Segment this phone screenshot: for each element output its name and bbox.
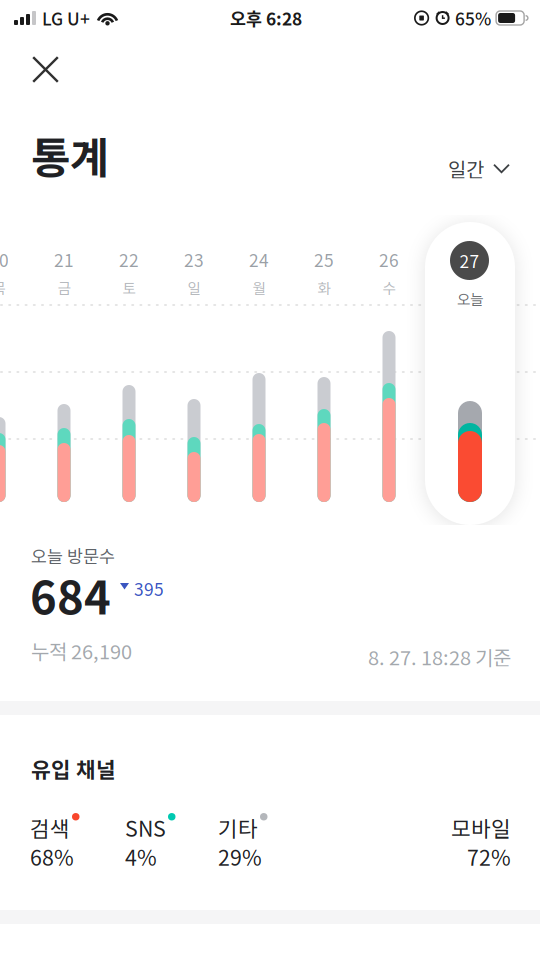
staticText: 모바일	[451, 812, 511, 843]
staticText: 395	[134, 576, 164, 601]
staticText: 26	[379, 247, 399, 272]
staticText: 8. 27. 18:28 기준	[368, 642, 511, 671]
staticText: 20	[0, 247, 9, 272]
staticText: 일간	[448, 154, 484, 183]
staticText: 오후 6:28	[230, 5, 302, 31]
button[interactable]: 일간	[440, 144, 518, 193]
staticText: 검색	[30, 812, 70, 843]
staticText: 화	[317, 277, 330, 298]
staticText: 수	[382, 277, 395, 298]
staticText: 일	[187, 277, 200, 298]
staticText: 토	[122, 277, 135, 298]
staticText: 4%	[125, 841, 157, 872]
staticText: 65%	[455, 5, 491, 31]
staticText: 오늘 방문수	[31, 543, 115, 568]
button[interactable]: Close	[18, 42, 73, 97]
staticText: LG U+	[42, 5, 90, 31]
staticText: 누적 26,190	[31, 636, 132, 665]
staticText: 27	[459, 248, 479, 273]
staticText: SNS	[125, 812, 166, 843]
staticText: 29%	[218, 841, 262, 872]
staticText: 오늘	[457, 288, 483, 309]
staticText: 목	[0, 277, 5, 298]
staticText: 72%	[467, 841, 511, 872]
staticText: 월	[252, 277, 265, 298]
staticText: 유입 채널	[31, 753, 116, 784]
staticText: 25	[314, 247, 334, 272]
staticText: 금	[57, 277, 70, 298]
staticText: 21	[54, 247, 74, 272]
staticText: 22	[119, 247, 139, 272]
staticText: 68%	[30, 841, 74, 872]
staticText: 24	[249, 247, 269, 272]
staticText: 684	[30, 562, 111, 628]
staticText: 기타	[218, 812, 258, 843]
staticText: 통계	[31, 124, 109, 186]
button[interactable]: 27일 오늘	[425, 222, 515, 525]
staticText: 23	[184, 247, 204, 272]
